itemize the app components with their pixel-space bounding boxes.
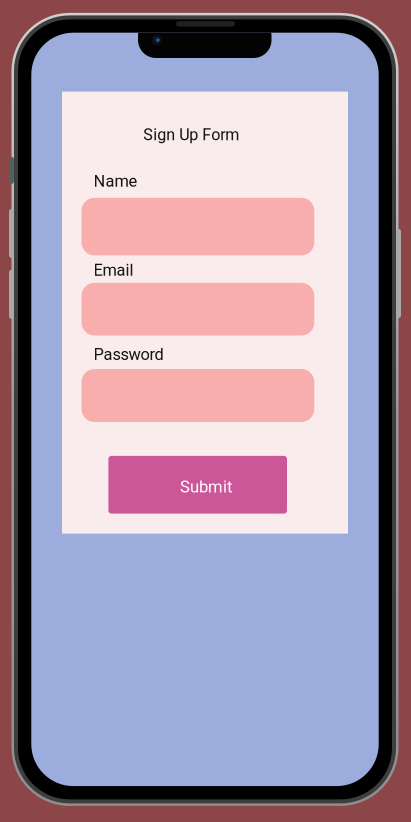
staticText: Email xyxy=(93,261,133,280)
staticText: Name xyxy=(93,171,137,191)
staticText: Submit xyxy=(180,477,232,496)
staticText: Sign Up Form xyxy=(143,125,239,144)
staticText: Password xyxy=(93,345,163,364)
button[interactable]: Submit xyxy=(108,456,287,514)
